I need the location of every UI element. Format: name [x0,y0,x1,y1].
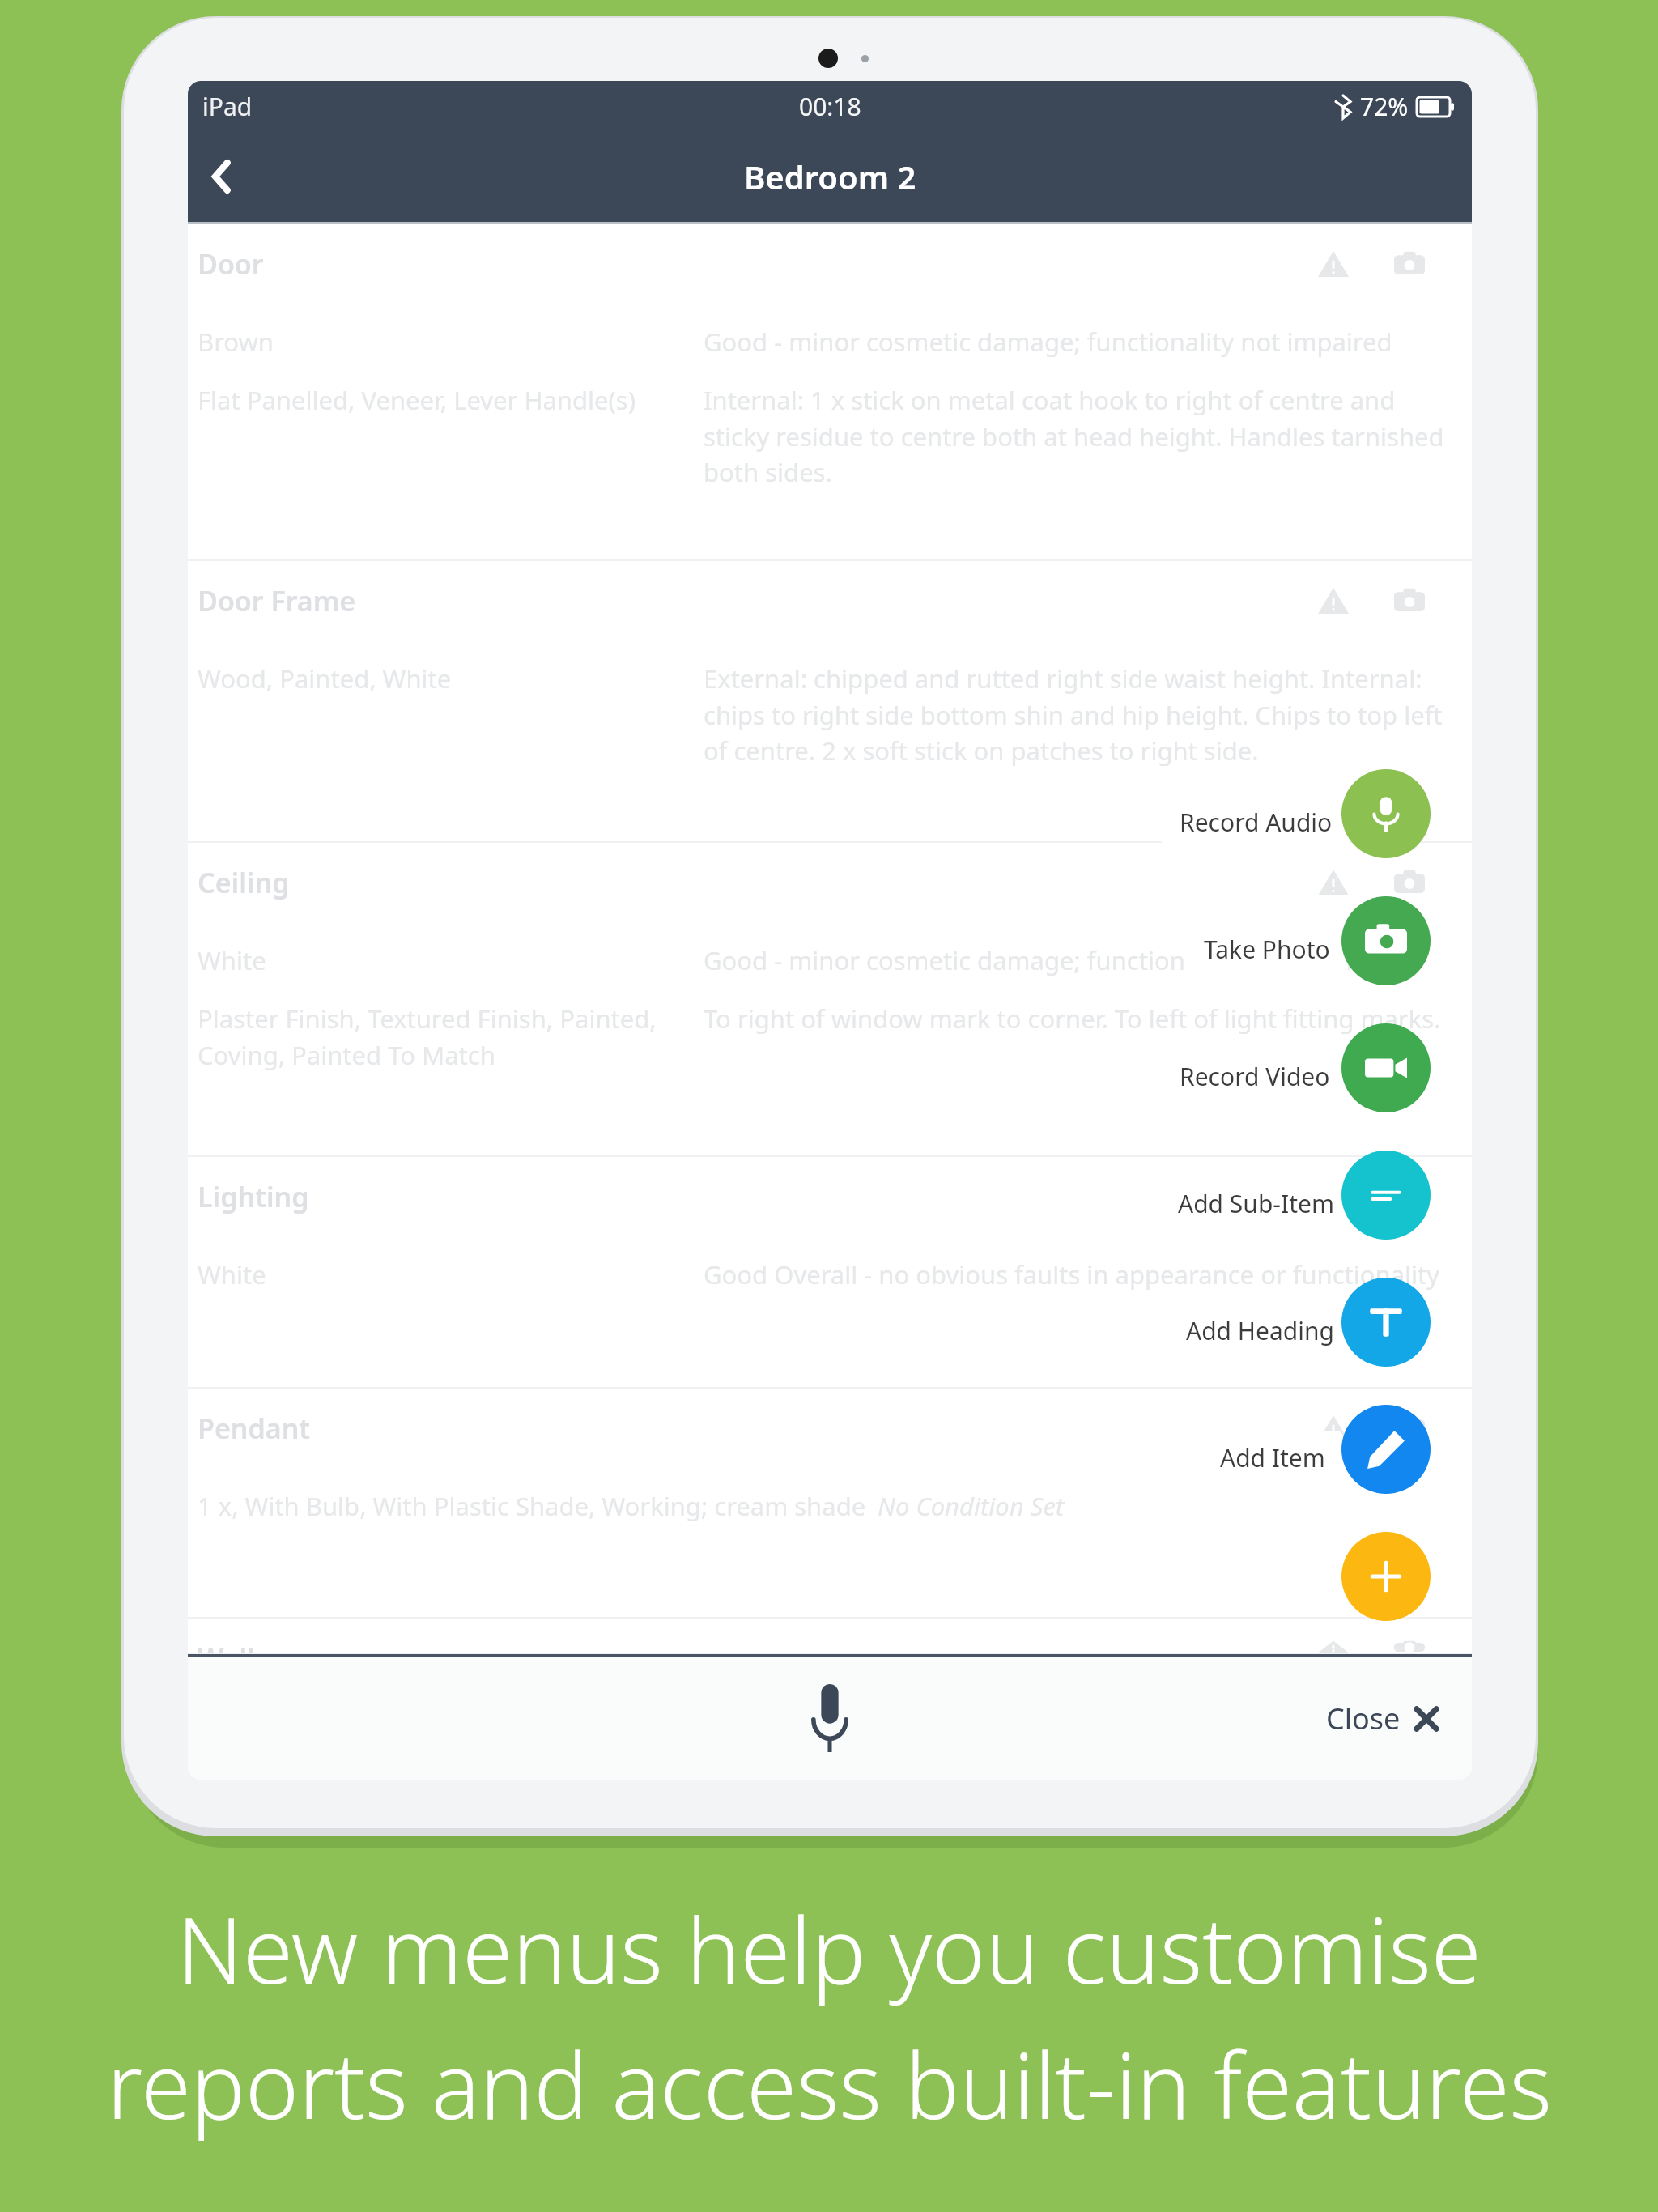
staticText: Lighting [198,1178,309,1215]
staticText: iPad [202,90,253,123]
button[interactable]: Record Video [1162,1049,1348,1104]
staticText: Door Frame [198,582,356,619]
staticText: Plaster Finish, Textured Finish, Painted… [198,1002,686,1072]
button[interactable]: Add Sub-Item [1160,1176,1352,1231]
staticText: Brown [198,325,274,359]
staticText: Record Video [1180,1060,1330,1093]
staticText: Wall [198,1640,255,1654]
button[interactable]: Pendant [188,1389,1472,1619]
button[interactable]: Add [1341,1532,1431,1621]
staticText: Flat Panelled, Veneer, Lever Handle(s) [198,383,636,417]
staticText: 00:18 [799,90,861,123]
button[interactable]: Back [188,143,256,211]
staticText: Ceiling [198,864,290,901]
button[interactable]: Add Item [1341,1405,1431,1494]
staticText: Door [198,245,264,283]
button[interactable]: Add Heading [1341,1278,1431,1367]
staticText: 1 x, With Bulb, With Plastic Shade, Work… [198,1489,866,1523]
button[interactable]: Dictate [785,1674,874,1763]
staticText: Wood, Painted, White [198,661,452,696]
staticText: Pendant [198,1410,311,1447]
staticText: White [198,943,266,977]
button[interactable]: Record Video [1341,1023,1431,1112]
staticText: White [198,1257,266,1291]
staticText: Record Audio [1180,806,1333,839]
staticText: Close [1326,1699,1401,1738]
button[interactable]: Close [1326,1699,1439,1738]
button[interactable]: Take Photo [1341,896,1431,985]
staticText: 72% [1360,90,1409,123]
button[interactable]: Door [188,224,1472,561]
staticText: Good - minor cosmetic damage; functional… [704,325,1392,359]
staticText: Add Heading [1186,1314,1335,1347]
staticText: Bedroom 2 [744,155,916,198]
staticText: reports and access built-in features [107,2022,1552,2146]
staticText: Good Overall - no obvious faults in appe… [704,1257,1440,1291]
button[interactable]: Add Sub-Item [1341,1151,1431,1240]
button[interactable]: Add Heading [1168,1304,1353,1358]
button[interactable]: Ceiling [188,843,1472,1157]
button[interactable]: Door Frame [188,561,1472,843]
button[interactable]: Lighting [188,1157,1472,1389]
staticText: Internal: 1 x stick on metal coat hook t… [704,383,1462,489]
button[interactable]: Add Item [1202,1431,1343,1485]
button[interactable]: Wall [188,1619,1472,1654]
button[interactable]: Record Audio [1341,769,1431,858]
staticText: Good - minor cosmetic damage; functional… [704,943,1392,977]
staticText: Add Item [1220,1441,1325,1474]
staticText: Take Photo [1204,933,1330,966]
staticText: To right of window mark to corner. To le… [704,1002,1441,1036]
staticText: Add Sub-Item [1178,1187,1334,1220]
staticText: No Condition Set [878,1489,1065,1523]
staticText: New menus help you customise [176,1887,1482,2010]
staticText: External: chipped and rutted right side … [704,661,1462,768]
button[interactable]: Take Photo [1186,922,1348,976]
button[interactable]: Record Audio [1162,795,1350,849]
